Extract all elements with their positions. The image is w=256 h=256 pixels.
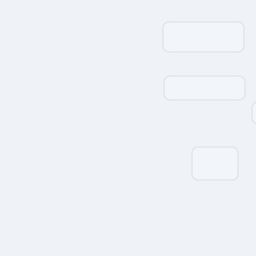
button[interactable]: Card one	[163, 22, 244, 52]
button[interactable]: Card two	[164, 76, 245, 100]
button[interactable]: Card four	[252, 102, 256, 124]
button[interactable]: Card three	[192, 147, 238, 180]
